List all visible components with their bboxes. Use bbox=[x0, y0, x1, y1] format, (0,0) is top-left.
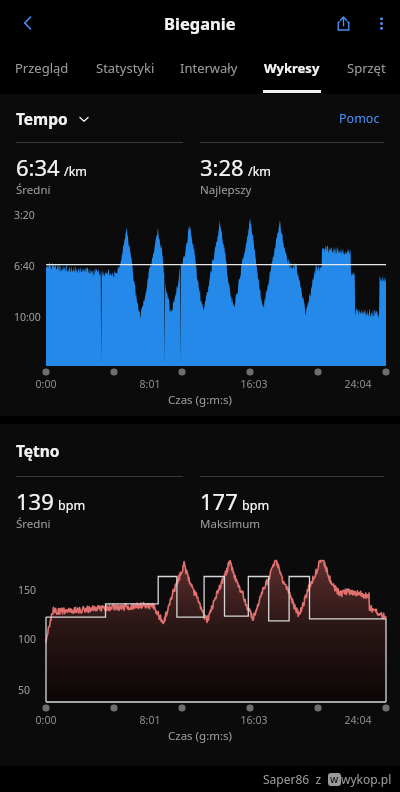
staticText: 24:04 bbox=[336, 713, 380, 727]
staticText: 24:04 bbox=[336, 377, 380, 391]
staticText: Pomoc bbox=[339, 110, 380, 127]
staticText: 10:00 bbox=[14, 310, 41, 324]
staticText: Najlepszy bbox=[200, 182, 252, 198]
staticText: 150 bbox=[18, 583, 37, 597]
staticText: Tętno bbox=[16, 440, 60, 461]
staticText: bpm bbox=[242, 497, 270, 514]
staticText: Maksimum bbox=[200, 516, 261, 532]
staticText: 6:34 bbox=[16, 152, 60, 182]
staticText: 100 bbox=[18, 632, 37, 646]
staticText: 0:00 bbox=[24, 377, 68, 391]
staticText: wykop.pl bbox=[341, 771, 392, 787]
staticText: 16:03 bbox=[232, 377, 276, 391]
staticText: Czas (g:m:s) bbox=[0, 392, 400, 408]
button[interactable]: 3:28 bbox=[200, 142, 384, 198]
staticText: Przegląd bbox=[15, 59, 69, 77]
button[interactable]: 139 bbox=[16, 476, 183, 532]
staticText: /km bbox=[64, 163, 88, 180]
staticText: Tempo bbox=[16, 108, 68, 129]
button[interactable]: Wstecz bbox=[12, 7, 44, 39]
staticText: Wykresy bbox=[264, 59, 320, 77]
staticText: 8:01 bbox=[128, 377, 172, 391]
staticText: Statystyki bbox=[96, 59, 155, 77]
staticText: Średni bbox=[16, 182, 51, 198]
button[interactable]: 177 bbox=[200, 476, 384, 532]
button[interactable]: Wykresy bbox=[250, 45, 333, 93]
button[interactable]: Więcej opcji bbox=[362, 4, 400, 42]
staticText: Średni bbox=[16, 516, 51, 532]
staticText: bpm bbox=[58, 497, 86, 514]
button[interactable]: Sprzęt bbox=[333, 45, 400, 93]
staticText: 0:00 bbox=[24, 713, 68, 727]
button[interactable]: Udostępnij bbox=[324, 4, 362, 42]
staticText: Interwały bbox=[180, 59, 238, 77]
button[interactable]: 6:34 bbox=[16, 142, 183, 198]
staticText: Saper86 z bbox=[263, 771, 322, 787]
staticText: Czas (g:m:s) bbox=[0, 728, 400, 744]
staticText: 139 bbox=[16, 486, 54, 516]
button[interactable]: Pomoc bbox=[335, 106, 384, 131]
staticText: 50 bbox=[18, 683, 31, 697]
staticText: 177 bbox=[200, 486, 238, 516]
button[interactable]: Przegląd bbox=[0, 45, 84, 93]
staticText: W bbox=[330, 774, 339, 786]
button[interactable]: Interwały bbox=[167, 45, 250, 93]
staticText: 6:40 bbox=[14, 259, 35, 273]
button[interactable]: Statystyki bbox=[84, 45, 167, 93]
staticText: /km bbox=[248, 163, 272, 180]
staticText: Bieganie bbox=[164, 12, 236, 34]
staticText: 3:20 bbox=[14, 208, 35, 222]
staticText: 3:28 bbox=[200, 152, 244, 182]
staticText: 8:01 bbox=[128, 713, 172, 727]
staticText: 16:03 bbox=[232, 713, 276, 727]
button[interactable]: Tempo bbox=[16, 108, 90, 129]
staticText: Sprzęt bbox=[347, 59, 386, 77]
button[interactable]: Tętno bbox=[16, 440, 60, 461]
